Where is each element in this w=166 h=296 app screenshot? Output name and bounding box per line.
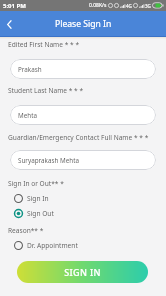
button[interactable]: Suryaprakash Mehta — [10, 150, 156, 170]
staticText: Sign In or Out** * — [8, 179, 64, 188]
button[interactable]: Mehta — [10, 105, 156, 125]
staticText: Reason** * — [8, 226, 44, 235]
staticText: 4G — [126, 3, 132, 9]
staticText: 0.08K/s — [89, 2, 107, 9]
staticText: Please Sign In — [55, 18, 112, 30]
staticText: Mehta — [18, 111, 37, 120]
staticText: Sign In — [27, 194, 49, 203]
staticText: 3G — [145, 3, 151, 9]
button[interactable]: Prakash — [10, 59, 156, 79]
staticText: Edited First Name * * * — [8, 40, 80, 49]
staticText: Student Last Name * * * — [8, 86, 84, 95]
staticText: Dr. Appointment — [27, 241, 78, 250]
staticText: Sign Out — [27, 209, 54, 218]
staticText: Suryaprakash Mehta — [18, 156, 79, 165]
button[interactable]: Back — [0, 15, 18, 33]
staticText: 5:01 PM — [3, 2, 26, 10]
button[interactable]: Dr. Appointment — [0, 238, 166, 253]
button[interactable]: Sign In — [0, 191, 166, 206]
button[interactable]: SIGN IN — [17, 261, 148, 283]
button[interactable]: Sign Out — [0, 206, 166, 221]
staticText: Prakash — [18, 65, 42, 74]
staticText: SIGN IN — [64, 266, 101, 278]
staticText: Guardian/Emergency Contact Full Name * *… — [8, 133, 149, 142]
